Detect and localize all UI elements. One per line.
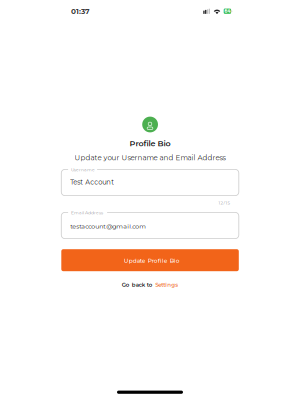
button[interactable]: Test Account bbox=[61, 169, 239, 196]
staticText: Username bbox=[71, 167, 95, 172]
staticText: testaccount@gmail.com bbox=[70, 222, 146, 230]
button[interactable]: testaccount@gmail.com bbox=[61, 212, 239, 239]
staticText: Update Profile Bio bbox=[124, 257, 180, 264]
button[interactable]: Go back to bbox=[0, 281, 300, 288]
button[interactable]: Update Profile Bio bbox=[61, 249, 239, 271]
staticText: Go back to bbox=[122, 281, 153, 288]
staticText: Update your Username and Email Address bbox=[74, 153, 225, 162]
staticText: 64 bbox=[224, 8, 230, 14]
staticText: Email Address bbox=[71, 210, 103, 215]
staticText: Test Account bbox=[70, 178, 114, 186]
staticText: 12/15 bbox=[219, 200, 230, 206]
staticText: Settings bbox=[155, 281, 178, 288]
staticText: Profile Bio bbox=[129, 138, 170, 148]
staticText: 01:37 bbox=[71, 7, 90, 16]
